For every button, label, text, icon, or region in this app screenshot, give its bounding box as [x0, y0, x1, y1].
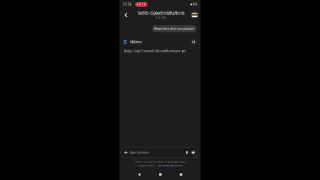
- staticText: 0:14: [139, 3, 146, 6]
- staticText: Text-to-Speech instructions: [137, 11, 184, 16]
- staticText: Gemini can make mistakes, including abou…: [134, 160, 185, 163]
- staticText: so double-check it.: [137, 164, 156, 167]
- staticText: Ask Gemini: [130, 150, 149, 155]
- staticText: 1.5 Pro: [155, 16, 166, 19]
- button[interactable]: Pause: [191, 39, 196, 45]
- staticText: 23:56: [123, 3, 132, 6]
- button[interactable]: Back: [138, 172, 141, 177]
- staticText: 6%: [193, 3, 197, 6]
- button[interactable]: Recents: [180, 173, 182, 176]
- staticText: Read this text out please: [154, 27, 194, 31]
- button[interactable]: Home: [159, 173, 162, 176]
- button[interactable]: Account: [191, 12, 198, 18]
- staticText: Your privacy and Gemini: [157, 164, 182, 167]
- staticText: Utilities: [130, 40, 142, 44]
- button[interactable]: Ask Gemini: [121, 147, 198, 157]
- button[interactable]: Back: [122, 9, 130, 20]
- staticText: Sorry, I can't search for notifications …: [123, 49, 186, 53]
